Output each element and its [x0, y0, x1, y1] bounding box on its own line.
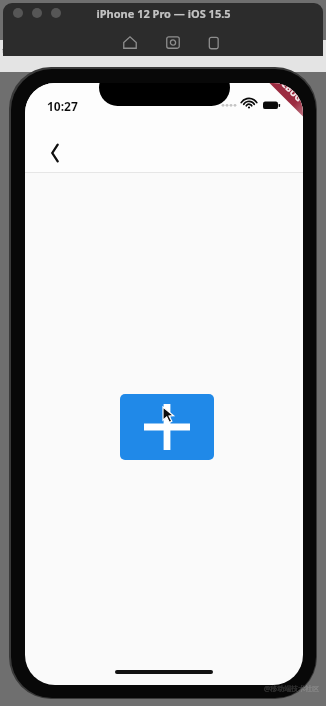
staticText: iPhone 12 Pro — iOS 15.5 — [96, 6, 231, 21]
staticText: ta-H — [2, 44, 20, 56]
staticText: 10:27 — [47, 98, 78, 114]
staticText: DEBUG — [275, 83, 303, 104]
button[interactable]: Home — [117, 29, 143, 55]
button[interactable]: Screenshot — [160, 29, 186, 55]
button[interactable]: Add — [120, 394, 214, 460]
button[interactable]: Back — [36, 134, 74, 172]
staticText: @移动端技术社区 — [264, 684, 320, 694]
button[interactable]: Rotate — [201, 29, 227, 55]
